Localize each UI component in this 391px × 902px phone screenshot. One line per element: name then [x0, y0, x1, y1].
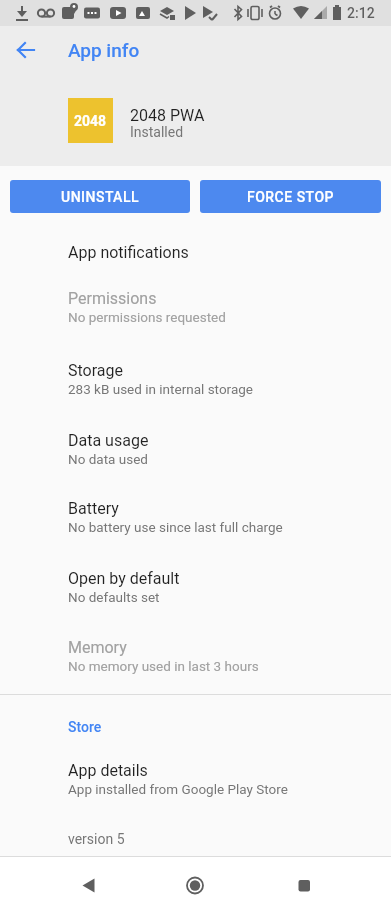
button[interactable]: Open by default: [0, 552, 391, 612]
button[interactable]: Storage: [0, 344, 391, 404]
staticText: version 5: [68, 831, 125, 847]
button[interactable]: Battery: [0, 482, 391, 542]
staticText: UNINSTALL: [61, 189, 140, 205]
staticText: 2048 PWA: [130, 106, 205, 125]
staticText: Open by default: [68, 569, 180, 588]
button[interactable]: [74, 871, 104, 901]
staticText: App installed from Google Play Store: [68, 781, 288, 797]
button[interactable]: App details: [0, 744, 391, 804]
button[interactable]: [10, 34, 42, 66]
staticText: No defaults set: [68, 589, 160, 605]
button[interactable]: App notifications: [0, 226, 391, 274]
staticText: Installed: [130, 124, 184, 140]
staticText: Storage: [68, 361, 123, 380]
staticText: 2:12: [347, 5, 375, 21]
button[interactable]: FORCE STOP: [200, 180, 381, 213]
staticText: App info: [68, 39, 140, 61]
button[interactable]: UNINSTALL: [10, 180, 190, 213]
staticText: Battery: [68, 499, 119, 518]
staticText: 283 kB used in internal storage: [68, 381, 253, 397]
button[interactable]: [180, 870, 210, 900]
button[interactable]: [290, 872, 320, 902]
staticText: App notifications: [68, 243, 189, 262]
button[interactable]: Permissions: [0, 272, 391, 332]
staticText: Memory: [68, 638, 127, 657]
button[interactable]: Memory: [0, 621, 391, 681]
staticText: No memory used in last 3 hours: [68, 658, 259, 674]
staticText: App details: [68, 761, 148, 780]
staticText: Store: [68, 719, 102, 735]
staticText: Data usage: [68, 431, 149, 450]
staticText: 2048: [74, 113, 107, 129]
staticText: No permissions requested: [68, 309, 226, 325]
staticText: No data used: [68, 451, 148, 467]
button[interactable]: Data usage: [0, 414, 391, 474]
staticText: Permissions: [68, 289, 157, 308]
staticText: FORCE STOP: [247, 189, 335, 205]
staticText: No battery use since last full charge: [68, 519, 283, 535]
